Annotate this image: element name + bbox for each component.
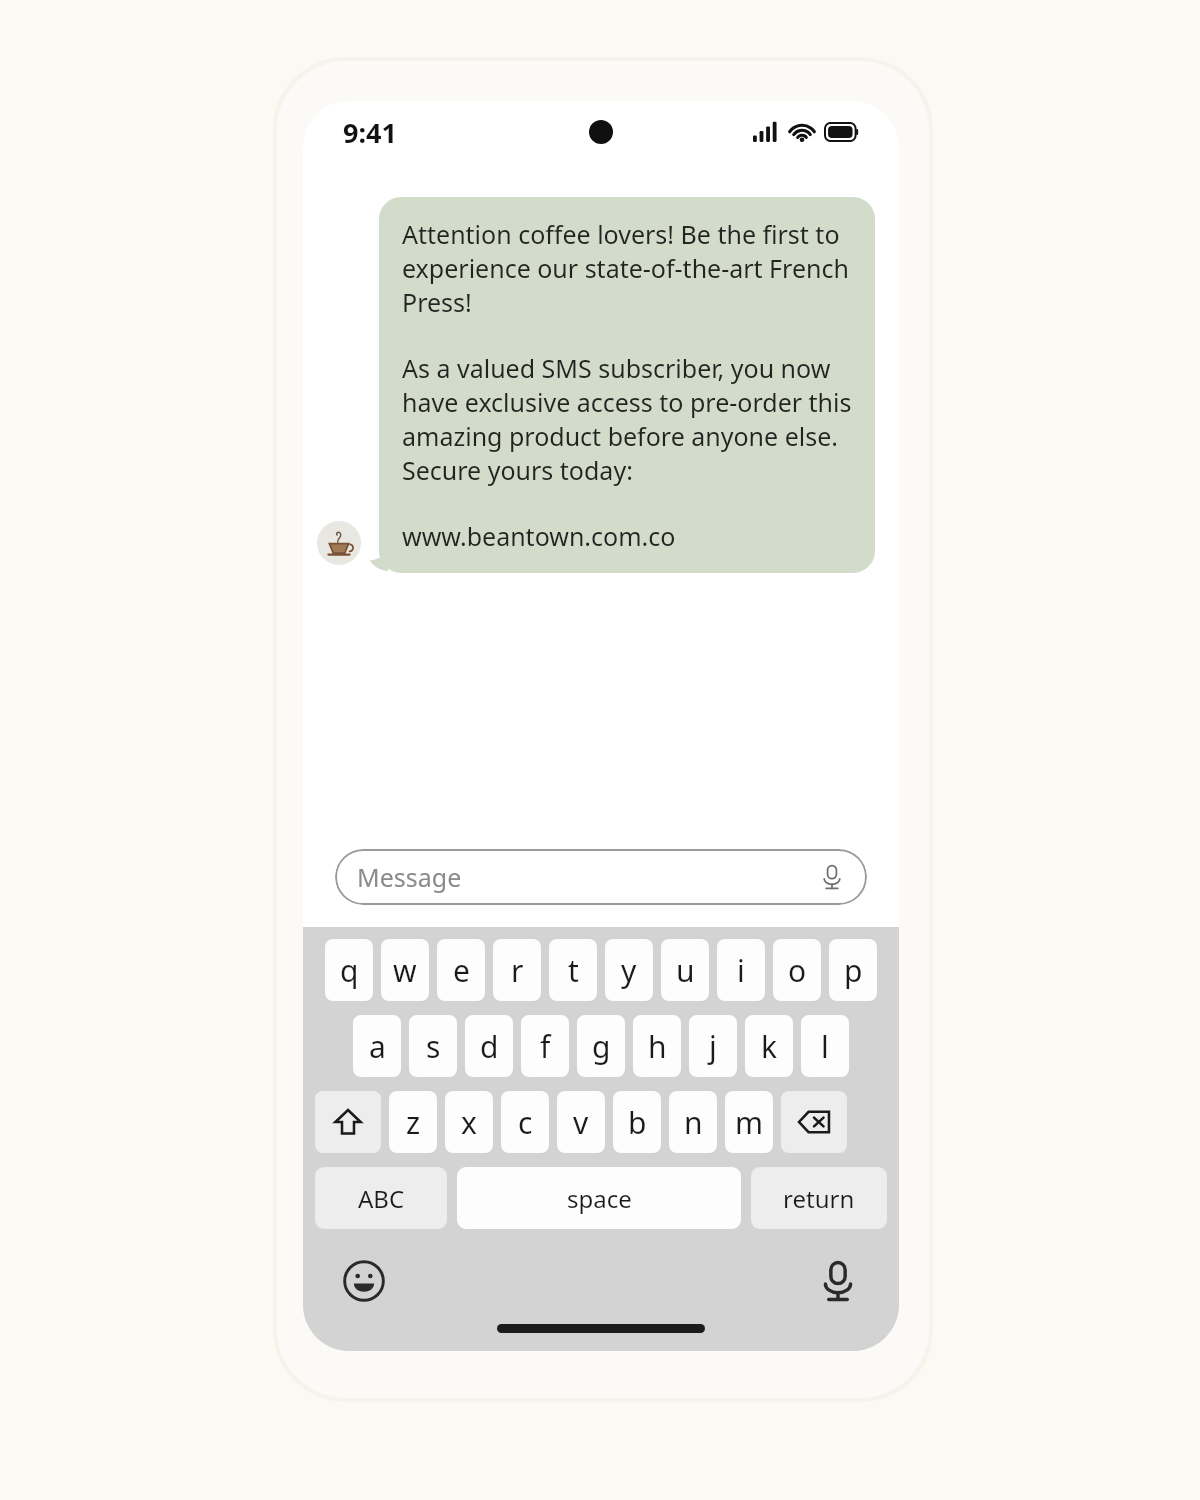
staticText: b	[628, 1102, 647, 1143]
staticText: y	[621, 950, 637, 991]
button[interactable]: f	[521, 1015, 569, 1077]
staticText: u	[676, 950, 695, 991]
staticText: www.beantown.com.co	[402, 519, 676, 553]
button[interactable]: q	[325, 939, 373, 1001]
staticText: f	[540, 1026, 551, 1067]
button[interactable]: r	[493, 939, 541, 1001]
button[interactable]: k	[745, 1015, 793, 1077]
staticText: Message	[357, 860, 462, 894]
button[interactable]: Attention coffee lovers! Be the first to…	[379, 197, 875, 573]
button[interactable]: c	[501, 1091, 549, 1153]
staticText: p	[844, 950, 863, 991]
staticText: z	[406, 1102, 421, 1143]
staticText: space	[567, 1182, 632, 1215]
staticText: w	[393, 950, 417, 991]
button[interactable]: u	[661, 939, 709, 1001]
button[interactable]: x	[445, 1091, 493, 1153]
staticText: r	[511, 950, 524, 991]
staticText: return	[783, 1182, 855, 1215]
button[interactable]: j	[689, 1015, 737, 1077]
button[interactable]: y	[605, 939, 653, 1001]
staticText: h	[648, 1026, 667, 1067]
staticText: k	[761, 1026, 778, 1067]
button[interactable]: Message	[335, 849, 867, 905]
button[interactable]: g	[577, 1015, 625, 1077]
staticText: t	[568, 950, 579, 991]
button[interactable]: l	[801, 1015, 849, 1077]
button[interactable]: d	[465, 1015, 513, 1077]
button[interactable]: Sender avatar	[317, 521, 361, 565]
button[interactable]: Emoji	[343, 1260, 385, 1302]
button[interactable]: o	[773, 939, 821, 1001]
staticText: c	[518, 1102, 533, 1143]
button[interactable]: ABC	[315, 1167, 447, 1229]
staticText: i	[737, 950, 745, 991]
button[interactable]: Voice typing	[817, 1260, 859, 1302]
other: Voice input	[819, 864, 845, 890]
button[interactable]: Backspace	[781, 1091, 847, 1153]
staticText: m	[735, 1102, 764, 1143]
button[interactable]: v	[557, 1091, 605, 1153]
button[interactable]: p	[829, 939, 877, 1001]
button[interactable]: w	[381, 939, 429, 1001]
staticText: v	[573, 1102, 589, 1143]
button[interactable]: m	[725, 1091, 773, 1153]
button[interactable]: return	[751, 1167, 887, 1229]
staticText: n	[684, 1102, 703, 1143]
button[interactable]: space	[457, 1167, 741, 1229]
staticText: d	[480, 1026, 499, 1067]
staticText: s	[426, 1026, 441, 1067]
staticText: q	[340, 950, 359, 991]
staticText: j	[709, 1026, 717, 1067]
button[interactable]: i	[717, 939, 765, 1001]
button[interactable]: s	[409, 1015, 457, 1077]
staticText: g	[592, 1026, 611, 1067]
button[interactable]: n	[669, 1091, 717, 1153]
button[interactable]: z	[389, 1091, 437, 1153]
staticText: a	[369, 1026, 386, 1067]
staticText: As a valued SMS subscriber, you now have…	[402, 351, 852, 487]
button[interactable]: h	[633, 1015, 681, 1077]
button[interactable]: Shift	[315, 1091, 381, 1153]
staticText: x	[461, 1102, 477, 1143]
staticText: Attention coffee lovers! Be the first to…	[402, 217, 852, 319]
button[interactable]: b	[613, 1091, 661, 1153]
staticText: l	[821, 1026, 829, 1067]
button[interactable]: e	[437, 939, 485, 1001]
staticText: 9:41	[343, 114, 397, 151]
button[interactable]: t	[549, 939, 597, 1001]
staticText: e	[453, 950, 470, 991]
staticText: ABC	[358, 1182, 405, 1215]
button[interactable]: a	[353, 1015, 401, 1077]
staticText: o	[788, 950, 807, 991]
